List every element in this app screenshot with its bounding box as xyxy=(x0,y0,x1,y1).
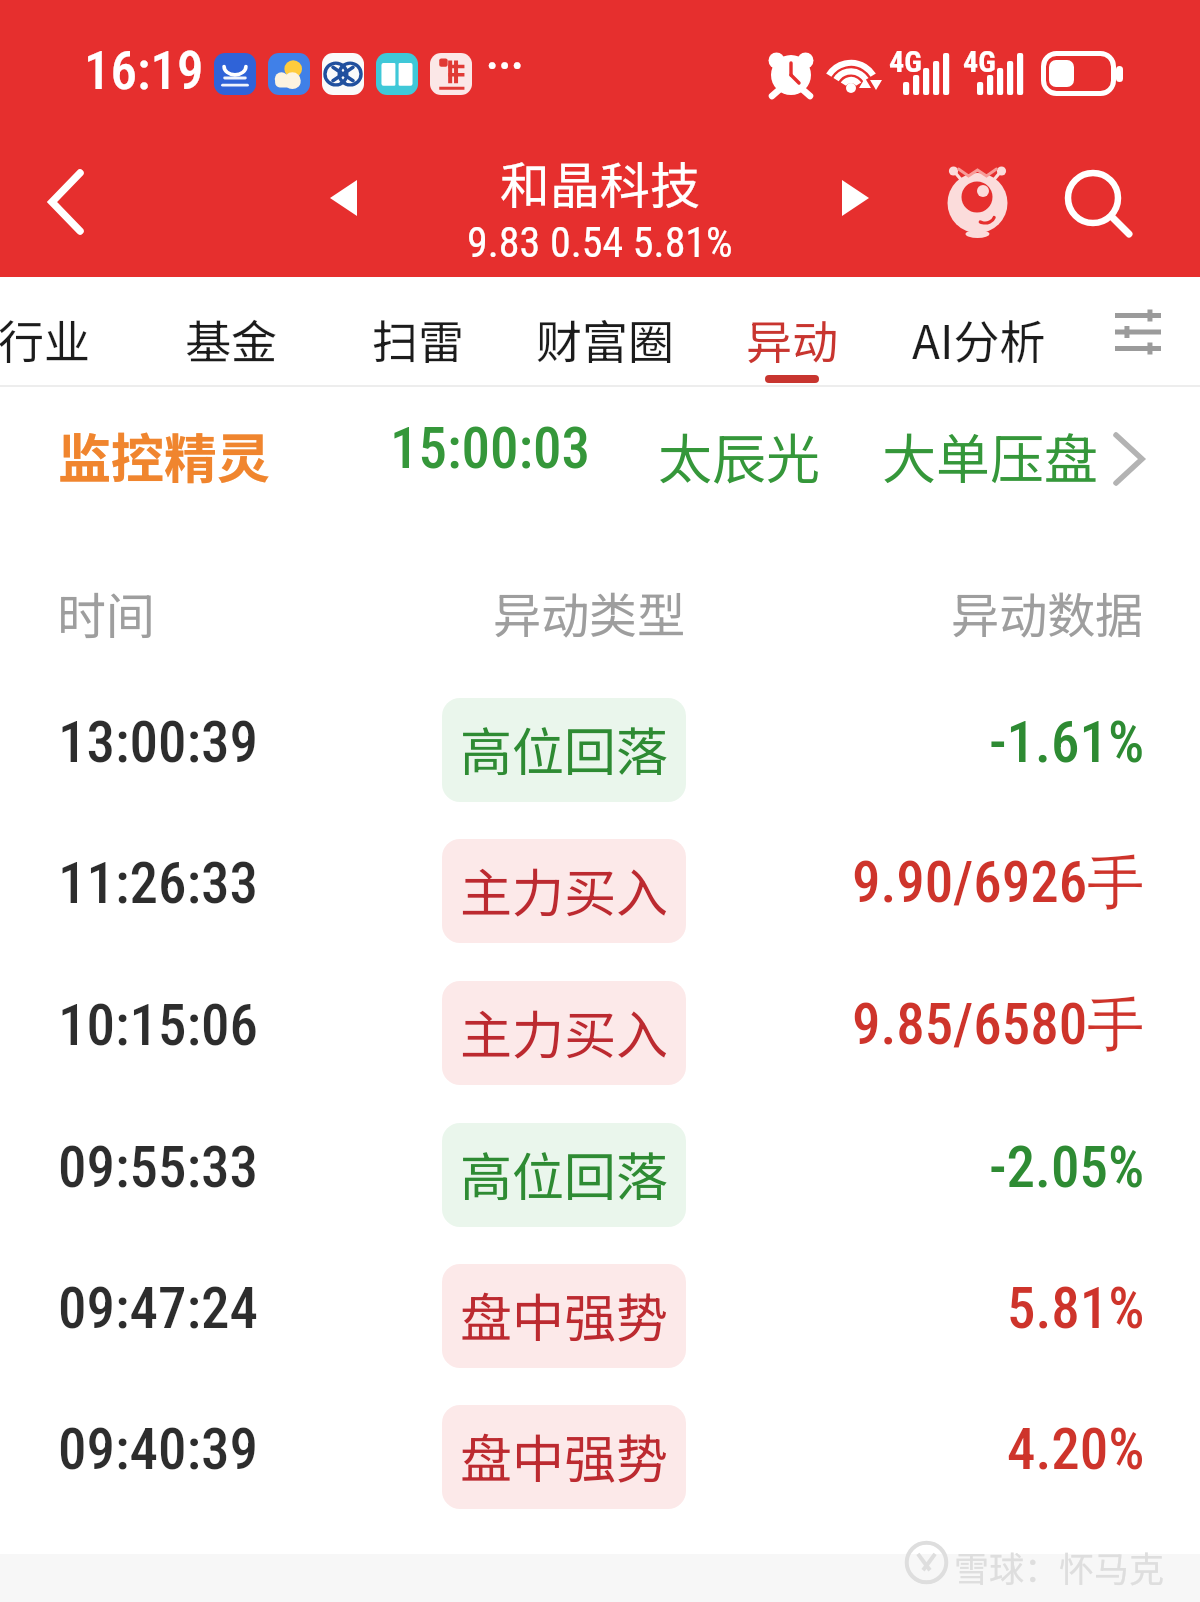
staticText: 扫雷 xyxy=(372,306,464,373)
staticText: 09:47:24 xyxy=(58,1275,259,1342)
staticText: 大单压盘 xyxy=(882,416,1098,494)
button[interactable]: Assistant xyxy=(930,155,1025,250)
staticText: 雪球：怀马克 xyxy=(954,1541,1165,1592)
staticText: -2.05% xyxy=(989,1134,1145,1201)
button[interactable]: Next xyxy=(822,165,888,231)
button[interactable]: Back xyxy=(24,160,108,244)
button[interactable]: Previous xyxy=(310,165,376,231)
staticText: 9.90/6926手 xyxy=(852,847,1145,919)
staticText: 4G xyxy=(889,44,922,79)
staticText: 时间 xyxy=(57,577,156,648)
button[interactable]: 11:26:33 xyxy=(0,820,1200,962)
button[interactable]: 异动 xyxy=(699,282,885,390)
staticText: 异动类型 xyxy=(493,577,686,647)
staticText: 基金 xyxy=(185,306,277,373)
button[interactable]: 13:00:39 xyxy=(0,679,1200,821)
staticText: 行业 xyxy=(0,306,90,373)
staticText: 主力买入 xyxy=(460,994,669,1069)
staticText: 异动数据 xyxy=(951,577,1144,647)
button[interactable]: 09:40:39 xyxy=(0,1386,1200,1528)
staticText: 15:00:03 xyxy=(390,415,591,482)
staticText: 监控精灵 xyxy=(58,417,270,494)
staticText: ··· xyxy=(486,40,524,92)
button[interactable]: 10:15:06 xyxy=(0,962,1200,1104)
staticText: 盘中强势 xyxy=(460,1418,669,1493)
staticText: 和晶科技 xyxy=(500,146,700,218)
staticText: -1.61% xyxy=(989,709,1145,776)
staticText: 太辰光 xyxy=(658,416,820,494)
button[interactable]: Filter xyxy=(1092,282,1184,390)
button[interactable]: 财富圈 xyxy=(512,282,698,390)
staticText: 盘中强势 xyxy=(460,1277,669,1352)
button[interactable]: 基金 xyxy=(138,282,324,390)
staticText: 5.81% xyxy=(1007,1275,1145,1342)
staticText: 财富圈 xyxy=(536,306,674,373)
button[interactable]: 扫雷 xyxy=(325,282,511,390)
button[interactable]: 09:55:33 xyxy=(0,1104,1200,1246)
button[interactable]: 监控精灵 xyxy=(0,392,1200,528)
button[interactable]: AI分析 xyxy=(886,282,1072,390)
staticText: 高位回落 xyxy=(460,1136,669,1211)
staticText: AI分析 xyxy=(912,306,1046,373)
staticText: 异动 xyxy=(746,306,838,373)
button[interactable]: 行业 xyxy=(0,282,137,390)
staticText: 高位回落 xyxy=(460,711,669,786)
staticText: 16:19 xyxy=(84,40,204,102)
staticText: 10:15:06 xyxy=(58,992,259,1059)
staticText: 09:55:33 xyxy=(58,1134,259,1201)
button[interactable]: 09:47:24 xyxy=(0,1245,1200,1387)
staticText: 9.85/6580手 xyxy=(852,989,1145,1061)
button[interactable]: Search xyxy=(1050,152,1142,244)
staticText: 11:26:33 xyxy=(58,850,259,917)
staticText: 4G xyxy=(963,44,996,79)
staticText: 4.20% xyxy=(1007,1416,1145,1483)
staticText: 13:00:39 xyxy=(58,709,259,776)
staticText: 09:40:39 xyxy=(58,1416,259,1483)
staticText: 主力买入 xyxy=(460,852,669,927)
staticText: 9.83 0.54 5.81% xyxy=(467,218,733,267)
